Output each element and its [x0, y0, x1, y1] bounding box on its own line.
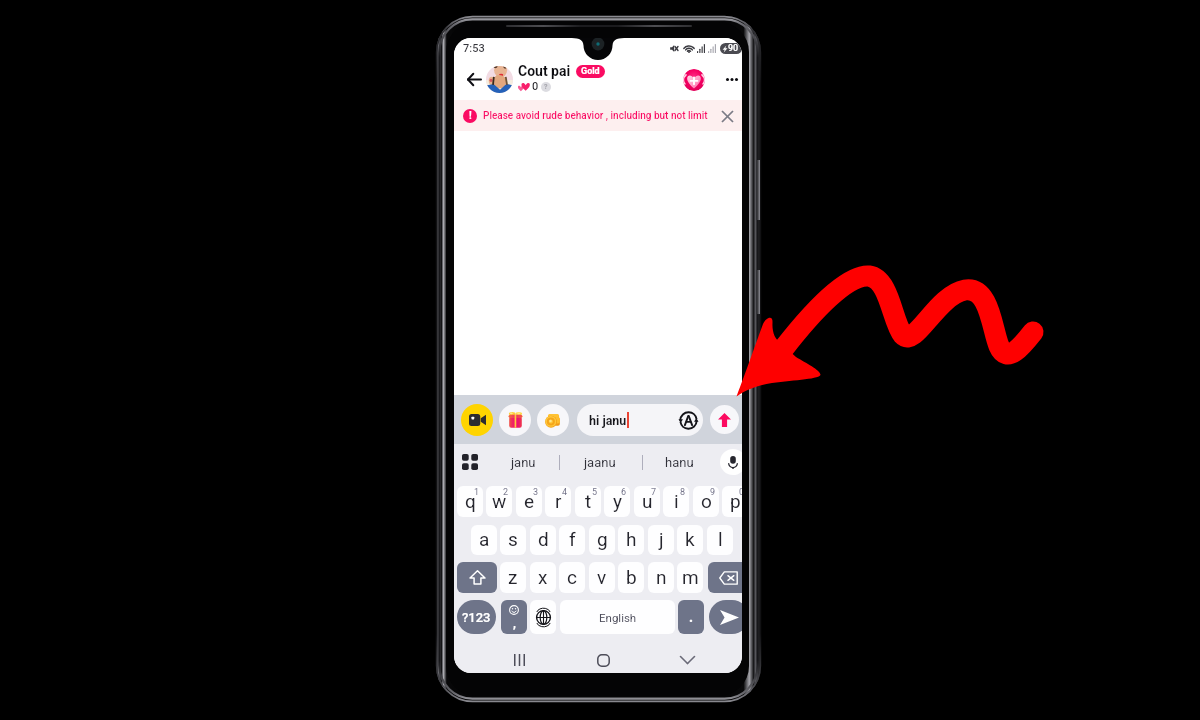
button[interactable]: j [648, 525, 674, 555]
staticText: h [626, 528, 637, 550]
button[interactable]: y [604, 486, 630, 517]
button[interactable]: l [707, 525, 733, 555]
staticText: 0 [532, 80, 539, 93]
staticText: w [492, 490, 507, 512]
button[interactable]: c [559, 562, 585, 593]
button[interactable]: d [530, 525, 556, 555]
button[interactable]: Change language [530, 600, 556, 634]
staticText: 9 [710, 487, 716, 498]
button[interactable]: w [486, 486, 512, 517]
button[interactable]: Emoji [501, 600, 527, 634]
staticText: 5 [592, 487, 598, 498]
button[interactable]: h [618, 525, 644, 555]
staticText: 2 [503, 487, 509, 498]
staticText: u [642, 490, 653, 512]
button[interactable]: a [471, 525, 497, 555]
staticText: f [569, 528, 576, 550]
button[interactable]: Send [709, 600, 742, 634]
staticText: m [682, 566, 699, 588]
button[interactable]: Recents [506, 647, 532, 673]
staticText: 4 [562, 487, 568, 498]
staticText: g [597, 528, 608, 550]
button[interactable]: English [560, 600, 675, 634]
button[interactable]: janu [493, 444, 553, 480]
staticText: janu [511, 455, 536, 470]
button[interactable]: Send gift [499, 404, 531, 436]
staticText: , [513, 617, 516, 631]
button[interactable]: i [663, 486, 689, 517]
staticText: c [567, 566, 577, 588]
staticText: Gold [581, 66, 600, 77]
staticText: hanu [665, 455, 694, 470]
button[interactable]: Add friend [683, 69, 705, 91]
staticText: t [585, 490, 592, 512]
button[interactable]: hi janu [577, 404, 703, 436]
button[interactable]: hanu [649, 444, 709, 480]
staticText: n [656, 566, 667, 588]
button[interactable]: Dismiss [717, 106, 737, 126]
button[interactable]: Back [462, 63, 486, 95]
button[interactable]: b [618, 562, 644, 593]
button[interactable]: Shift [457, 562, 497, 593]
button[interactable]: Send message [710, 405, 739, 434]
staticText: l [718, 528, 723, 550]
button[interactable]: Coins [537, 404, 569, 436]
button[interactable]: More options [719, 64, 742, 94]
button[interactable]: m [677, 562, 703, 593]
button[interactable]: u [634, 486, 660, 517]
button[interactable]: g [589, 525, 615, 555]
staticText: 90 [728, 43, 739, 54]
staticText: Please avoid rude behavior , including b… [483, 110, 714, 122]
staticText: hi janu [589, 413, 627, 428]
button[interactable]: Hide keyboard [674, 647, 700, 673]
staticText: p [730, 490, 741, 512]
staticText: j [659, 528, 664, 550]
staticText: Cout pai [518, 63, 571, 79]
staticText: r [555, 490, 562, 512]
staticText: jaanu [584, 455, 616, 470]
button[interactable]: Profile photo [486, 66, 513, 93]
staticText: English [599, 611, 637, 624]
button[interactable]: Video call [461, 404, 493, 436]
staticText: 1 [474, 487, 480, 498]
button[interactable]: Translate [679, 411, 698, 430]
button[interactable]: Period [678, 600, 704, 634]
button[interactable]: r [545, 486, 571, 517]
staticText: o [701, 490, 712, 512]
button[interactable]: p [722, 486, 742, 517]
button[interactable]: Keyboard toolbar [458, 450, 482, 474]
staticText: 6 [621, 487, 627, 498]
staticText: a [479, 528, 490, 550]
button[interactable]: n [648, 562, 674, 593]
button[interactable]: s [500, 525, 526, 555]
button[interactable]: e [516, 486, 542, 517]
button[interactable]: Symbols [457, 600, 496, 634]
staticText: e [524, 490, 535, 512]
button[interactable]: t [575, 486, 601, 517]
button[interactable]: q [457, 486, 483, 517]
staticText: i [674, 490, 679, 512]
button[interactable]: f [559, 525, 585, 555]
staticText: 3 [533, 487, 539, 498]
button[interactable]: Home [590, 647, 616, 673]
staticText: d [538, 528, 549, 550]
staticText: ?123 [462, 610, 491, 625]
staticText: v [597, 566, 607, 588]
staticText: s [508, 528, 518, 550]
staticText: b [626, 566, 637, 588]
button[interactable]: o [693, 486, 719, 517]
button[interactable]: z [500, 562, 526, 593]
button[interactable]: v [589, 562, 615, 593]
button[interactable]: Voice input [720, 449, 742, 475]
staticText: y [613, 490, 622, 512]
staticText: 7 [651, 487, 657, 498]
button[interactable]: Backspace [708, 562, 742, 593]
staticText: 0 [739, 487, 742, 498]
button[interactable]: jaanu [570, 444, 630, 480]
staticText: ! [469, 110, 472, 122]
staticText: 7:53 [463, 42, 485, 55]
button[interactable]: k [677, 525, 703, 555]
button[interactable]: x [530, 562, 556, 593]
staticText: q [465, 490, 476, 512]
staticText: k [685, 528, 695, 550]
